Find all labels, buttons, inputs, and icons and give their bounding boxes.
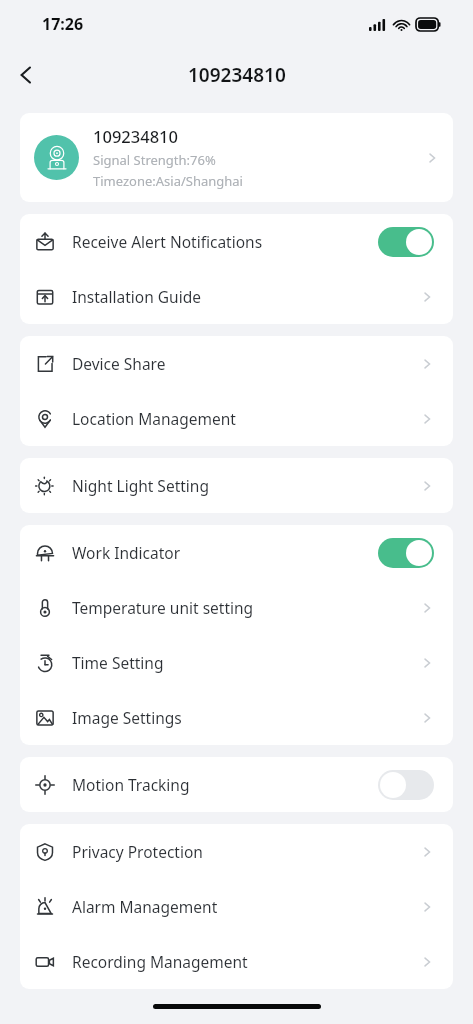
- staticText: Signal Strength:76%: [93, 151, 216, 169]
- button[interactable]: Location Management: [20, 391, 453, 446]
- button[interactable]: Night Light Setting: [20, 458, 453, 513]
- button[interactable]: Back: [0, 49, 52, 101]
- staticText: Image Settings: [72, 707, 182, 728]
- button[interactable]: Toggle on: [378, 227, 434, 257]
- button[interactable]: Image Settings: [20, 690, 453, 745]
- staticText: Recording Management: [72, 951, 248, 972]
- button[interactable]: Work Indicator: [20, 525, 453, 580]
- staticText: 109234810: [188, 62, 286, 88]
- staticText: Temperature unit setting: [72, 597, 254, 618]
- staticText: 109234810: [93, 125, 178, 147]
- staticText: 17:26: [42, 13, 84, 35]
- staticText: Motion Tracking: [72, 774, 190, 795]
- staticText: Location Management: [72, 408, 236, 429]
- button[interactable]: Receive Alert Notifications: [20, 214, 453, 269]
- staticText: Night Light Setting: [72, 475, 209, 496]
- staticText: Work Indicator: [72, 542, 181, 563]
- staticText: Installation Guide: [72, 286, 201, 307]
- button[interactable]: Time Setting: [20, 635, 453, 690]
- staticText: Device Share: [72, 353, 166, 374]
- button[interactable]: Motion Tracking: [20, 757, 453, 812]
- button[interactable]: 109234810: [20, 113, 453, 202]
- button[interactable]: Installation Guide: [20, 269, 453, 324]
- staticText: Receive Alert Notifications: [72, 231, 263, 252]
- button[interactable]: Toggle off: [378, 770, 434, 800]
- staticText: Privacy Protection: [72, 841, 203, 862]
- button[interactable]: Temperature unit setting: [20, 580, 453, 635]
- button[interactable]: Privacy Protection: [20, 824, 453, 879]
- button[interactable]: Toggle on: [378, 538, 434, 568]
- staticText: Timezone:Asia/Shanghai: [93, 172, 243, 190]
- button[interactable]: Recording Management: [20, 934, 453, 989]
- button[interactable]: Device Share: [20, 336, 453, 391]
- button[interactable]: Alarm Management: [20, 879, 453, 934]
- staticText: Time Setting: [72, 652, 164, 673]
- staticText: Alarm Management: [72, 896, 218, 917]
